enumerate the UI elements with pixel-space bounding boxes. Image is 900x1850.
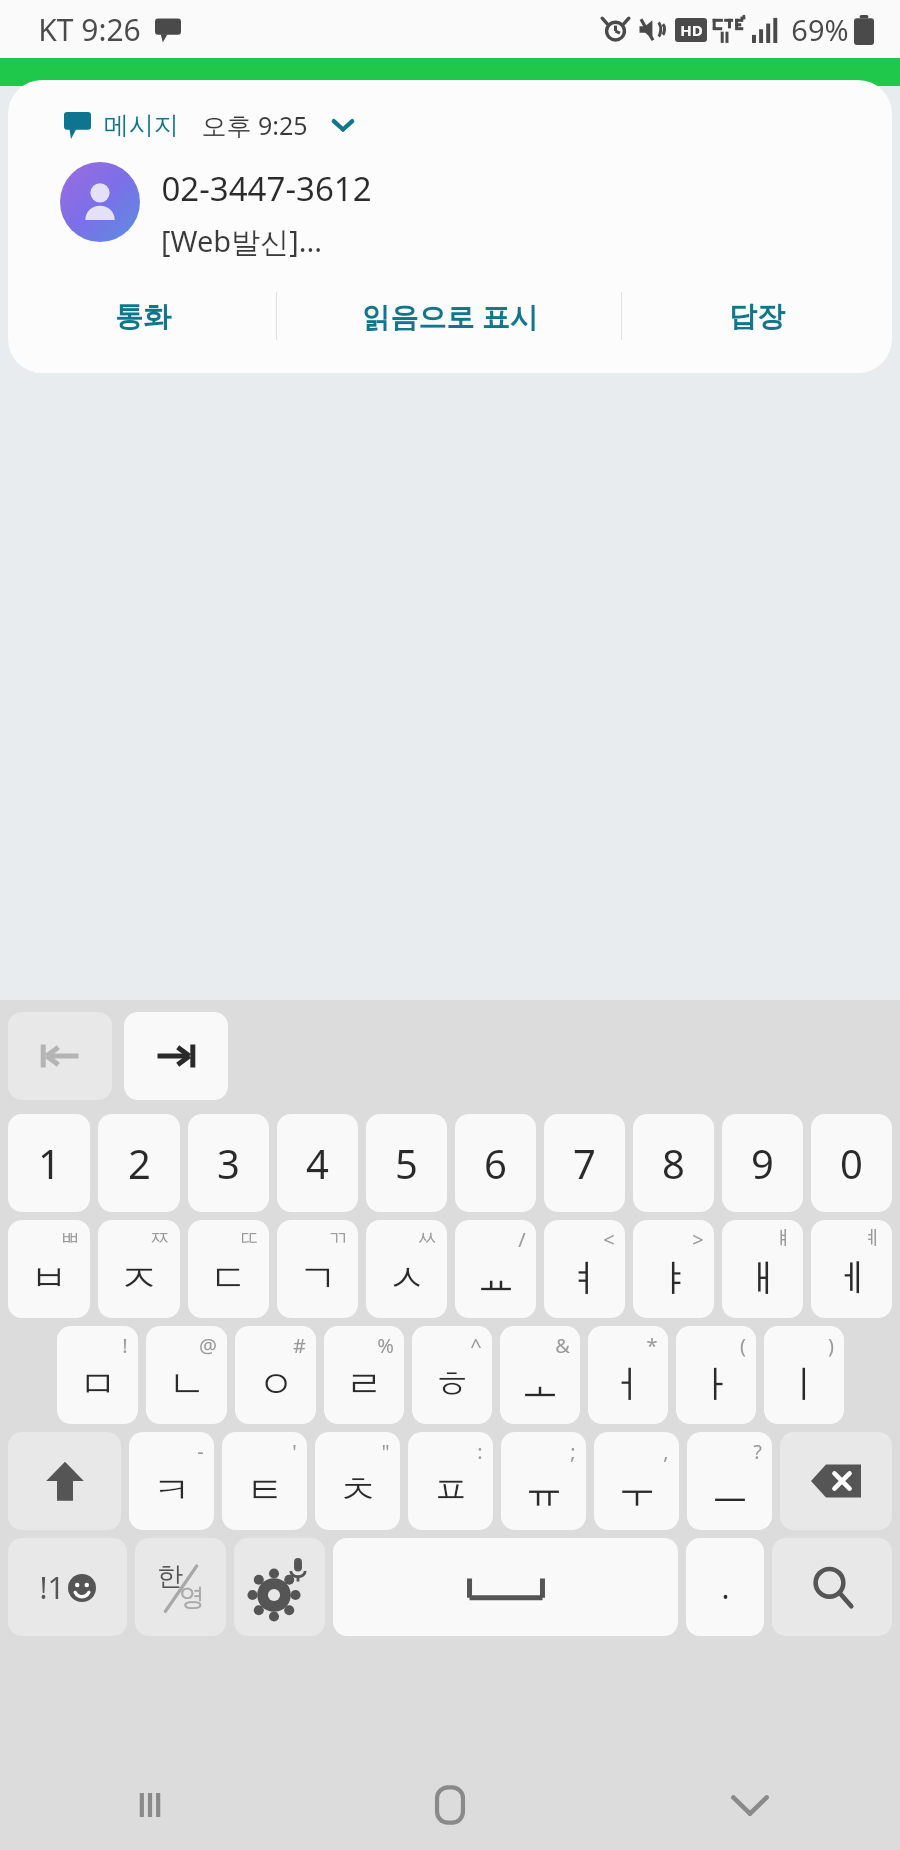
staticText: . [721, 1567, 730, 1608]
staticText: ㅜ [618, 1466, 656, 1514]
button[interactable]: Previous field [8, 1012, 112, 1100]
button[interactable]: & [500, 1326, 580, 1424]
staticText: ( [740, 1332, 746, 1359]
staticText: 8 [662, 1136, 685, 1190]
button[interactable]: Expand notification [326, 108, 360, 142]
staticText: 읽음으로 표시 [362, 297, 538, 335]
staticText: 9 [751, 1136, 774, 1190]
staticText: ㅆ [417, 1226, 437, 1251]
button[interactable]: ; [501, 1432, 586, 1530]
button[interactable]: Recent apps [0, 1760, 300, 1850]
button[interactable]: . [686, 1538, 764, 1636]
staticText: 통화 [115, 299, 171, 334]
staticText: 답장 [729, 299, 785, 334]
button[interactable]: 5 [366, 1114, 447, 1212]
button[interactable]: ㅆ [366, 1220, 447, 1318]
button[interactable]: Backspace [780, 1432, 892, 1530]
staticText: @ [199, 1332, 217, 1359]
staticText: 1 [38, 1136, 61, 1190]
button[interactable]: 통화 [8, 273, 277, 359]
button[interactable]: ) [764, 1326, 844, 1424]
staticText: : [477, 1438, 483, 1465]
staticText: ' [292, 1438, 297, 1465]
button[interactable]: 8 [633, 1114, 714, 1212]
button[interactable]: Keyboard settings [234, 1538, 325, 1636]
button[interactable]: Next field [124, 1012, 228, 1100]
button[interactable]: 0 [811, 1114, 892, 1212]
staticText: ㅕ [566, 1254, 604, 1302]
staticText: ? [753, 1438, 762, 1465]
button[interactable]: 6 [455, 1114, 536, 1212]
staticText: ㄷ [210, 1254, 248, 1302]
staticText: ㅓ [609, 1360, 647, 1408]
button[interactable]: ? [687, 1432, 772, 1530]
staticText: - [197, 1438, 204, 1465]
button[interactable]: 7 [544, 1114, 625, 1212]
staticText: !1 [39, 1567, 65, 1608]
button[interactable]: ㄸ [188, 1220, 269, 1318]
button[interactable]: < [544, 1220, 625, 1318]
button[interactable]: 2 [98, 1114, 180, 1212]
button[interactable]: : [408, 1432, 493, 1530]
button[interactable]: # [235, 1326, 316, 1424]
staticText: 3 [217, 1136, 240, 1190]
staticText: ㅈ [120, 1254, 158, 1302]
button[interactable]: 답장 [622, 273, 892, 359]
staticText: ㄱ [299, 1254, 337, 1302]
staticText: ㅌ [246, 1466, 284, 1514]
button[interactable]: @ [146, 1326, 227, 1424]
button[interactable]: 3 [188, 1114, 269, 1212]
staticText: , [663, 1438, 669, 1465]
button[interactable]: ㅖ [811, 1220, 892, 1318]
staticText: ㅠ [525, 1466, 563, 1514]
staticText: ㅍ [432, 1466, 470, 1514]
staticText: ) [828, 1332, 834, 1359]
staticText: ㅂ [30, 1254, 68, 1302]
staticText: ㅁ [79, 1360, 117, 1408]
button[interactable]: - [129, 1432, 214, 1530]
button[interactable]: Shift [8, 1432, 121, 1530]
button[interactable]: ㅃ [8, 1220, 90, 1318]
staticText: KT 9:26 [38, 9, 141, 50]
staticText: ㅊ [339, 1466, 377, 1514]
button[interactable]: 1 [8, 1114, 90, 1212]
staticText: ㅡ [711, 1466, 749, 1514]
button[interactable]: Change language [135, 1538, 226, 1636]
button[interactable]: ^ [412, 1326, 492, 1424]
button[interactable]: 4 [277, 1114, 358, 1212]
staticText: 한 [157, 1560, 183, 1593]
button[interactable]: 메시지 [8, 80, 892, 373]
button[interactable]: % [324, 1326, 404, 1424]
button[interactable]: ㅒ [722, 1220, 803, 1318]
staticText: > [692, 1226, 704, 1253]
button[interactable]: Search [772, 1538, 892, 1636]
button[interactable]: ( [676, 1326, 756, 1424]
button[interactable]: 읽음으로 표시 [277, 273, 622, 359]
button[interactable]: Home [300, 1760, 600, 1850]
button[interactable]: , [594, 1432, 679, 1530]
button[interactable]: * [588, 1326, 668, 1424]
staticText: 영 [179, 1581, 205, 1614]
button[interactable]: ㄲ [277, 1220, 358, 1318]
button[interactable]: ' [222, 1432, 307, 1530]
button[interactable]: Symbols and emoji [8, 1538, 127, 1636]
staticText: ㄸ [239, 1226, 259, 1251]
staticText: * [646, 1332, 658, 1359]
button[interactable]: ㅉ [98, 1220, 180, 1318]
button[interactable]: > [633, 1220, 714, 1318]
staticText: 2 [128, 1136, 151, 1190]
button[interactable]: Space [333, 1538, 678, 1636]
staticText: ㅐ [744, 1254, 782, 1302]
button[interactable]: / [455, 1220, 536, 1318]
button[interactable]: " [315, 1432, 400, 1530]
staticText: ㅒ [773, 1226, 793, 1251]
staticText: 메시지 [104, 110, 179, 141]
staticText: 0 [840, 1136, 863, 1190]
staticText: ; [570, 1438, 576, 1465]
staticText: HD [680, 20, 703, 40]
button[interactable]: ! [57, 1326, 138, 1424]
staticText: ㅑ [655, 1254, 693, 1302]
staticText: ㅅ [388, 1254, 426, 1302]
button[interactable]: Hide keyboard [600, 1760, 900, 1850]
button[interactable]: 9 [722, 1114, 803, 1212]
